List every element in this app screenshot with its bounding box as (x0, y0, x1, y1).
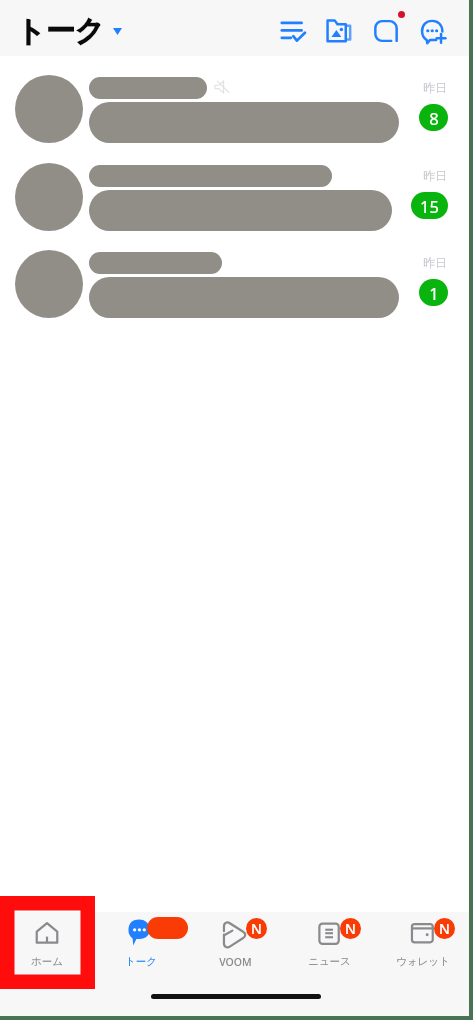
staticText: トーク (16, 13, 105, 50)
staticText: 15 (420, 195, 439, 217)
staticText: ニュース (308, 955, 351, 968)
staticText: 昨日 (423, 80, 447, 95)
staticText: N (439, 919, 450, 938)
button[interactable]: 昨日 (0, 56, 473, 144)
button[interactable]: New chat (413, 11, 453, 51)
staticText: 昨日 (423, 168, 447, 183)
button[interactable]: ニュース (282, 912, 376, 976)
button[interactable]: VOOM (188, 912, 282, 976)
button[interactable]: トーク (16, 13, 122, 50)
button[interactable]: ホーム (0, 912, 94, 976)
staticText: 8 (429, 107, 439, 129)
staticText: N (345, 919, 356, 938)
staticText: 昨日 (423, 255, 447, 270)
staticText: ホーム (31, 955, 63, 968)
button[interactable]: トーク (94, 912, 188, 976)
button[interactable]: 昨日 (0, 144, 473, 232)
staticText: N (251, 919, 262, 938)
button[interactable]: Sort chats (273, 11, 313, 51)
button[interactable]: 昨日 (0, 231, 473, 319)
staticText: トーク (125, 955, 157, 968)
button[interactable]: ウォレット (376, 912, 470, 976)
staticText: ウォレット (396, 955, 450, 968)
button[interactable]: Open chat (366, 11, 406, 51)
staticText: VOOM (219, 955, 252, 969)
staticText: 1 (429, 282, 439, 304)
button[interactable]: Albums (319, 11, 359, 51)
